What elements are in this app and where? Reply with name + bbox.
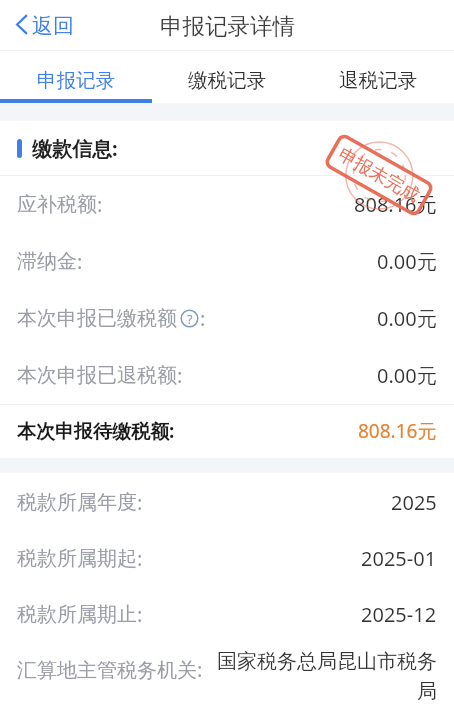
staticText: 退税记录 — [339, 68, 418, 93]
staticText: 税款所属期止 — [17, 602, 137, 627]
staticText: 808.16元 — [358, 418, 437, 444]
staticText: : — [200, 305, 206, 332]
staticText: 0.00元 — [377, 362, 437, 389]
staticText: 申报未完成 — [334, 143, 424, 208]
staticText: 缴款信息: — [32, 135, 118, 162]
button[interactable]: 退税记录 — [303, 51, 454, 103]
staticText: 本次申报已退税额 — [17, 363, 177, 388]
staticText: : — [97, 191, 103, 218]
staticText: 2025-12 — [361, 601, 437, 628]
staticText: 税款所属年度 — [17, 490, 137, 515]
staticText: 本次申报待缴税额: — [17, 418, 175, 444]
staticText: 2025 — [391, 489, 437, 516]
staticText: 汇算地主管税务机关: — [17, 656, 203, 683]
staticText: 申报记录详情 — [160, 12, 295, 40]
staticText: : — [137, 545, 143, 572]
staticText: 0.00元 — [377, 305, 437, 332]
staticText: : — [137, 601, 143, 628]
staticText: 0.00元 — [377, 248, 437, 275]
staticText: 申报记录 — [37, 68, 116, 93]
staticText: 本次申报已缴税额 — [17, 306, 177, 331]
staticText: 国家税务总局昆山市税务局 — [215, 649, 437, 704]
staticText: : — [137, 489, 143, 516]
staticText: 返回 — [32, 13, 74, 39]
staticText: ? — [187, 310, 193, 328]
staticText: 2025-01 — [361, 545, 437, 572]
button[interactable]: 返回 — [0, 0, 454, 51]
staticText: : — [177, 362, 183, 389]
staticText: : — [77, 248, 83, 275]
staticText: 808.16元 — [354, 191, 437, 218]
staticText: 应补税额 — [17, 192, 97, 217]
staticText: 缴税记录 — [188, 68, 267, 93]
staticText: 税款所属期起 — [17, 546, 137, 571]
button[interactable]: 缴税记录 — [152, 51, 303, 103]
staticText: 滞纳金 — [17, 249, 77, 274]
button[interactable]: 申报记录 — [0, 51, 152, 103]
